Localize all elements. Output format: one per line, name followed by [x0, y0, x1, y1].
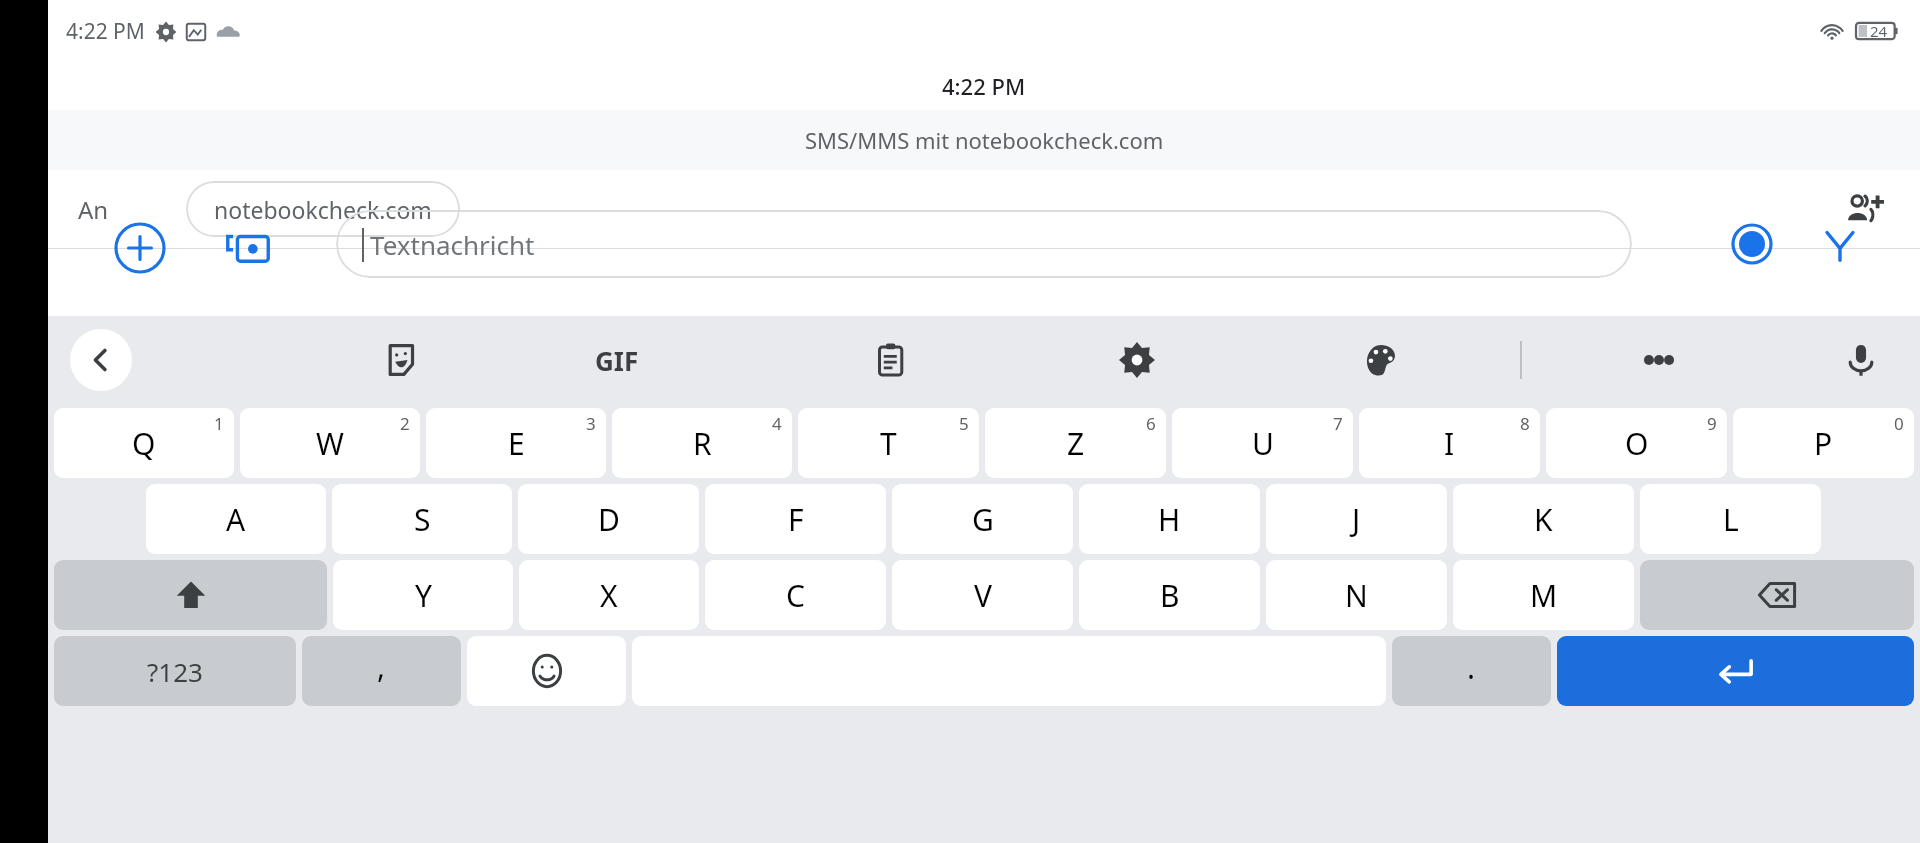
staticText: 8 [1520, 412, 1530, 435]
staticText: K [1534, 499, 1553, 540]
staticText: . [1467, 647, 1476, 688]
staticText: 0 [1894, 412, 1904, 435]
staticText: 7 [1333, 412, 1343, 435]
button[interactable]: Stickers [370, 329, 432, 391]
staticText: An [78, 193, 109, 226]
staticText: 6 [1146, 412, 1156, 435]
staticText: G [972, 499, 994, 540]
button[interactable]: W [240, 408, 420, 478]
staticText: Q [132, 423, 156, 464]
button[interactable]: G [892, 484, 1073, 554]
button[interactable]: Camera [218, 218, 278, 278]
button[interactable]: D [518, 484, 699, 554]
button[interactable]: Y [333, 560, 513, 630]
staticText: L [1723, 499, 1739, 540]
button[interactable]: U [1172, 408, 1353, 478]
button[interactable]: GIF [586, 329, 648, 391]
staticText: O [1625, 423, 1649, 464]
staticText: 4 [772, 412, 782, 435]
button[interactable]: Emoji [1724, 216, 1780, 272]
staticText: R [693, 423, 712, 464]
button[interactable]: . [1392, 636, 1551, 706]
staticText: H [1158, 499, 1181, 540]
button[interactable]: ?123 [54, 636, 296, 706]
button[interactable]: Enter [1557, 636, 1914, 706]
staticText: U [1252, 423, 1274, 464]
staticText: I [1444, 423, 1455, 464]
staticText: Z [1067, 423, 1085, 464]
button[interactable]: S [332, 484, 512, 554]
button[interactable]: H [1079, 484, 1260, 554]
button[interactable]: P [1733, 408, 1914, 478]
button[interactable]: Q [54, 408, 234, 478]
staticText: M [1530, 575, 1558, 616]
staticText: B [1160, 575, 1180, 616]
staticText: GIF [595, 343, 639, 378]
staticText: E [508, 423, 525, 464]
button[interactable]: Voice input [1830, 329, 1892, 391]
staticText: C [786, 575, 805, 616]
staticText: V [974, 575, 992, 616]
staticText: N [1345, 575, 1368, 616]
button[interactable]: Emoji [467, 636, 626, 706]
button[interactable]: E [426, 408, 606, 478]
button[interactable]: Settings [1106, 329, 1168, 391]
staticText: D [598, 499, 620, 540]
staticText: 24 [1870, 21, 1888, 41]
staticText: 4:22 PM [942, 71, 1026, 101]
staticText: S [414, 499, 431, 540]
staticText: 3 [586, 412, 596, 435]
button[interactable]: C [705, 560, 886, 630]
staticText: T [880, 423, 897, 464]
button[interactable]: L [1640, 484, 1821, 554]
button[interactable]: Backspace [1640, 560, 1914, 630]
button[interactable]: T [798, 408, 979, 478]
staticText: A [226, 499, 246, 540]
button[interactable]: O [1546, 408, 1727, 478]
staticText: 9 [1707, 412, 1717, 435]
button[interactable]: Add attachment [110, 218, 170, 278]
button[interactable]: , [302, 636, 461, 706]
staticText: P [1814, 423, 1833, 464]
button[interactable]: K [1453, 484, 1634, 554]
button[interactable]: F [705, 484, 886, 554]
staticText: 1 [214, 412, 224, 435]
button[interactable]: Clipboard [860, 329, 922, 391]
staticText: J [1352, 499, 1361, 540]
staticText: 4:22 PM [66, 17, 145, 46]
staticText: Textnachricht [370, 227, 535, 262]
button[interactable]: M [1453, 560, 1634, 630]
button[interactable]: Add contact [1836, 181, 1892, 237]
button[interactable]: Themes [1350, 329, 1412, 391]
button[interactable]: More options [1628, 329, 1690, 391]
staticText: , [377, 646, 386, 687]
staticText: X [600, 575, 618, 616]
button[interactable]: J [1266, 484, 1447, 554]
button[interactable]: Shift [54, 560, 327, 630]
button[interactable]: Back [70, 329, 132, 391]
button[interactable]: X [519, 560, 699, 630]
staticText: ?123 [147, 654, 203, 689]
button[interactable]: A [146, 484, 326, 554]
button[interactable]: V [892, 560, 1073, 630]
button[interactable]: Send [1812, 216, 1868, 272]
staticText: 2 [400, 412, 410, 435]
staticText: 5 [959, 412, 969, 435]
staticText: notebookcheck.com [214, 194, 432, 225]
button[interactable]: N [1266, 560, 1447, 630]
button[interactable]: R [612, 408, 792, 478]
button[interactable]: I [1359, 408, 1540, 478]
button[interactable]: notebookcheck.com [186, 181, 460, 237]
staticText: SMS/MMS mit notebookcheck.com [805, 125, 1164, 155]
staticText: F [788, 499, 804, 540]
staticText: W [316, 423, 344, 464]
staticText: Y [415, 575, 432, 616]
button[interactable]: Textnachricht [336, 210, 1632, 278]
button[interactable]: Z [985, 408, 1166, 478]
button[interactable]: B [1079, 560, 1260, 630]
